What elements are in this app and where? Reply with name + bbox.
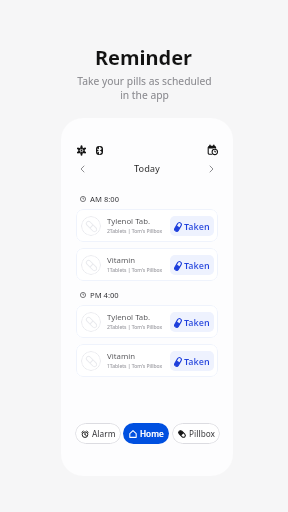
button[interactable]: Calendar schedule — [207, 144, 219, 156]
staticText: Tylenol Tab. — [107, 216, 151, 227]
staticText: Vitamin — [107, 255, 135, 266]
staticText: Taken — [184, 316, 210, 328]
staticText: Today — [134, 162, 160, 175]
button[interactable]: Pillbox — [172, 423, 220, 444]
staticText: Take your pills as scheduled in the app — [77, 74, 212, 102]
button[interactable]: Taken — [170, 255, 214, 275]
button[interactable]: Alarm — [75, 423, 121, 444]
button[interactable]: Taken — [170, 312, 214, 332]
staticText: Taken — [184, 220, 210, 232]
button[interactable]: Next day — [205, 162, 218, 175]
staticText: 1Tablets | Tom's Pillbox — [107, 363, 163, 370]
button[interactable]: Taken — [170, 216, 214, 236]
staticText: Pillbox — [189, 428, 215, 439]
staticText: 1Tablets | Tom's Pillbox — [107, 267, 163, 274]
button[interactable]: Settings — [75, 144, 87, 156]
staticText: Tylenol Tab. — [107, 312, 151, 323]
staticText: Alarm — [92, 428, 116, 439]
button[interactable]: Vitamin — [76, 248, 218, 281]
button[interactable]: Bluetooth — [93, 144, 105, 156]
button[interactable]: Taken — [170, 351, 214, 371]
button[interactable]: Home — [123, 423, 169, 444]
staticText: 2Tablets | Tom's Pillbox — [107, 324, 163, 331]
staticText: Home — [140, 428, 164, 439]
staticText: PM 4:00 — [90, 290, 119, 300]
staticText: Reminder — [95, 44, 193, 71]
staticText: 2Tablets | Tom's Pillbox — [107, 228, 163, 235]
button[interactable]: Vitamin — [76, 344, 218, 377]
button[interactable]: Tylenol Tab. — [76, 305, 218, 338]
staticText: Taken — [184, 355, 210, 367]
staticText: Taken — [184, 259, 210, 271]
staticText: Vitamin — [107, 351, 135, 362]
staticText: AM 8:00 — [90, 194, 120, 204]
button[interactable]: Previous day — [76, 162, 89, 175]
button[interactable]: Tylenol Tab. — [76, 209, 218, 242]
